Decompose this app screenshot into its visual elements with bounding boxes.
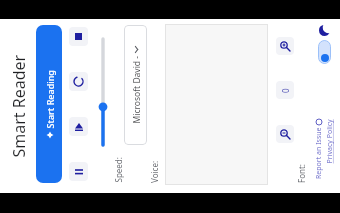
button[interactable]: Replay: [69, 72, 88, 91]
button[interactable]: Stop: [69, 27, 88, 46]
button[interactable]: Toggle dark mode: [318, 40, 331, 64]
button[interactable]: Microsoft David -: [124, 25, 147, 145]
button[interactable]: Speed: [96, 39, 110, 145]
button[interactable]: Increase font size: [276, 37, 294, 55]
staticText: Smart Reader: [7, 54, 29, 157]
button[interactable]: 0: [276, 81, 294, 99]
button[interactable]: Report an Issue: [314, 119, 324, 179]
staticText: 0: [280, 88, 291, 93]
staticText: Font:: [296, 164, 307, 183]
button[interactable]: Privacy Policy: [324, 119, 334, 164]
staticText: Report an Issue: [314, 127, 324, 179]
button[interactable]: Menu: [69, 162, 88, 181]
button[interactable]: Start Reading: [36, 25, 62, 183]
staticText: Privacy Policy: [324, 118, 334, 163]
staticText: Speed:: [112, 156, 123, 182]
button[interactable]: Decrease font size: [276, 125, 294, 143]
button[interactable]: Volume: [69, 117, 88, 136]
staticText: Voice:: [149, 160, 160, 183]
other: Dark mode: [319, 25, 330, 36]
staticText: Microsoft David -: [130, 55, 142, 123]
staticText: Start Reading: [43, 69, 55, 128]
